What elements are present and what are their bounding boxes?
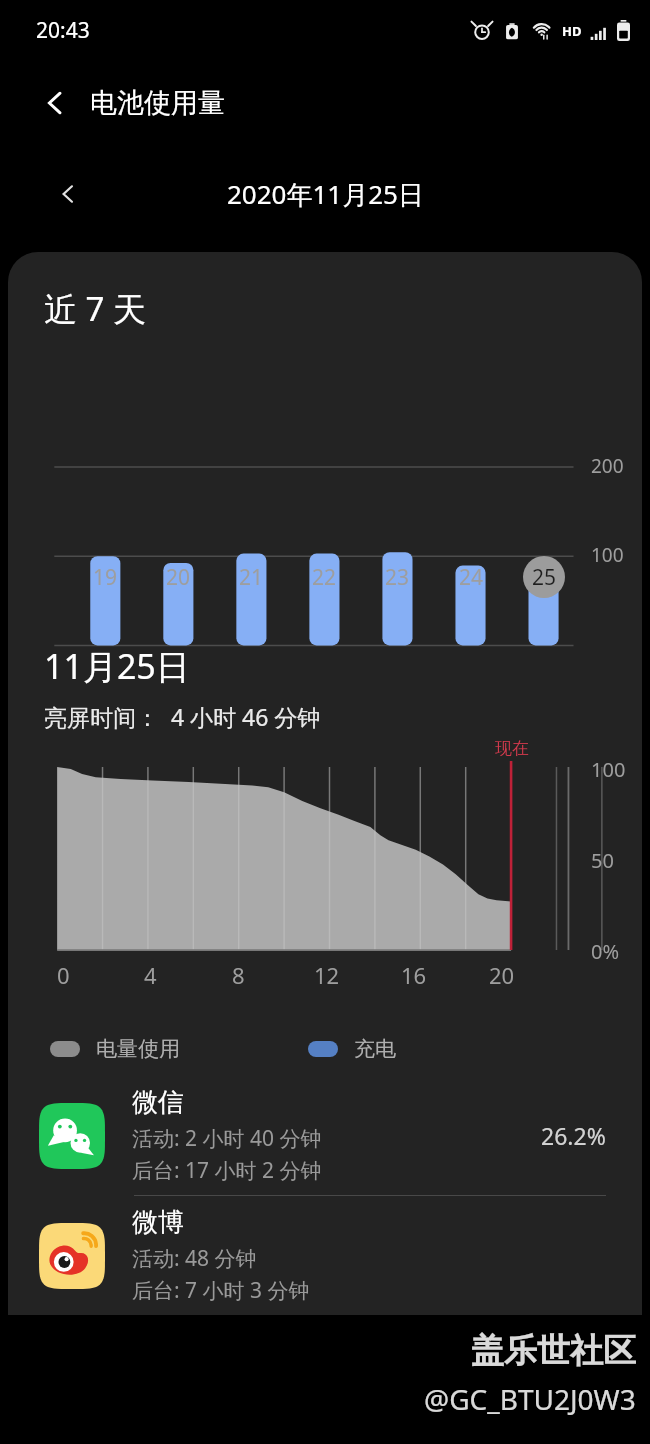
staticText: 后台: 17 小时 2 分钟 bbox=[132, 1156, 322, 1185]
staticText: 23 bbox=[385, 563, 410, 592]
staticText: 20:43 bbox=[36, 16, 90, 45]
staticText: 19 bbox=[93, 563, 118, 592]
staticText: 现在 bbox=[495, 738, 529, 759]
staticText: 微博 bbox=[132, 1206, 184, 1239]
staticText: 0 bbox=[57, 960, 70, 990]
button[interactable]: Previous day bbox=[46, 172, 90, 216]
staticText: 活动: 2 小时 40 分钟 bbox=[132, 1124, 322, 1153]
button[interactable]: 200 bbox=[8, 331, 642, 603]
button[interactable]: Back bbox=[32, 80, 78, 126]
button[interactable]: 微信 bbox=[8, 1076, 642, 1195]
staticText: 26.2% bbox=[541, 1120, 606, 1151]
staticText: 电量使用 bbox=[96, 1036, 180, 1062]
staticText: 20 bbox=[489, 960, 515, 990]
staticText: 活动: 48 分钟 bbox=[132, 1244, 257, 1273]
staticText: 25 bbox=[532, 563, 557, 592]
staticText: 微信 bbox=[132, 1086, 184, 1119]
button[interactable]: Back bbox=[0, 60, 650, 146]
staticText: 21 bbox=[239, 563, 264, 592]
staticText: 200 bbox=[591, 453, 624, 479]
staticText: 充电 bbox=[354, 1036, 396, 1062]
staticText: 50 bbox=[591, 847, 614, 874]
staticText: 电池使用量 bbox=[90, 86, 225, 120]
staticText: 2020年11月25日 bbox=[227, 176, 424, 212]
staticText: 16 bbox=[401, 960, 427, 990]
staticText: 24 bbox=[459, 563, 484, 592]
staticText: @GC_BTU2J0W3 bbox=[424, 1380, 636, 1418]
staticText: 后台: 7 小时 3 分钟 bbox=[132, 1276, 310, 1305]
staticText: 亮屏时间： 4 小时 46 分钟 bbox=[44, 701, 321, 732]
staticText: 8 bbox=[232, 960, 245, 990]
staticText: 盖乐世社区 bbox=[471, 1330, 636, 1372]
staticText: 11月25日 bbox=[44, 643, 190, 689]
staticText: 22 bbox=[312, 563, 337, 592]
staticText: 4 bbox=[144, 960, 157, 990]
button[interactable]: 现在 bbox=[8, 732, 642, 1032]
button[interactable]: 微博 bbox=[8, 1196, 642, 1315]
staticText: 近 7 天 bbox=[44, 286, 147, 331]
staticText: 12 bbox=[314, 960, 340, 990]
staticText: 100 bbox=[591, 756, 626, 783]
staticText: 0% bbox=[591, 938, 620, 965]
staticText: 20 bbox=[166, 563, 191, 592]
staticText: HD bbox=[562, 22, 582, 40]
staticText: 100 bbox=[591, 542, 624, 568]
